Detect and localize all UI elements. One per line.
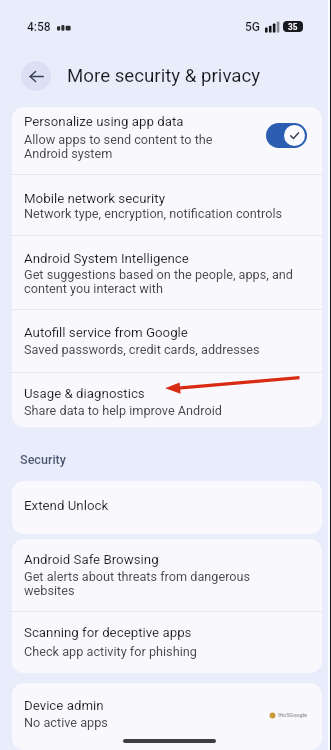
staticText: 9to5Google [278, 712, 308, 719]
button[interactable] [12, 235, 322, 307]
staticText: Check app activity for phishing [24, 644, 197, 659]
staticText: Mobile network security [24, 191, 165, 207]
staticText: 35 [288, 22, 298, 32]
button[interactable] [12, 611, 322, 673]
staticText: Share data to help improve Android [24, 403, 222, 418]
button[interactable]: Back [21, 61, 51, 91]
button[interactable] [12, 174, 322, 235]
button[interactable]: Personalize using app data toggle [266, 123, 307, 148]
staticText: Device admin [24, 698, 104, 714]
staticText: Saved passwords, credit cards, addresses [24, 342, 260, 357]
staticText: No active apps [24, 715, 108, 730]
button[interactable] [12, 538, 322, 612]
staticText: 5G [245, 20, 260, 34]
button[interactable] [12, 683, 322, 743]
button[interactable] [12, 375, 322, 427]
staticText: Android Safe Browsing [24, 552, 159, 568]
button[interactable] [12, 107, 322, 174]
staticText: Scanning for deceptive apps [24, 625, 192, 641]
staticText: Get suggestions based on the people, app… [24, 267, 293, 296]
button[interactable] [12, 306, 322, 375]
staticText: Extend Unlock [24, 498, 109, 514]
staticText: Get alerts about threats from dangerous … [24, 569, 251, 598]
staticText: Autofill service from Google [24, 325, 188, 341]
staticText: Security [20, 452, 66, 467]
staticText: Usage & diagnostics [24, 386, 145, 402]
staticText: Allow apps to send content to the Androi… [24, 132, 213, 161]
staticText: Personalize using app data [24, 114, 184, 130]
staticText: More security & privacy [67, 65, 261, 87]
button[interactable] [12, 481, 322, 534]
staticText: Android System Intelligence [24, 251, 189, 267]
staticText: Network type, encryption, notification c… [24, 206, 283, 221]
staticText: 4:58 [27, 20, 51, 34]
